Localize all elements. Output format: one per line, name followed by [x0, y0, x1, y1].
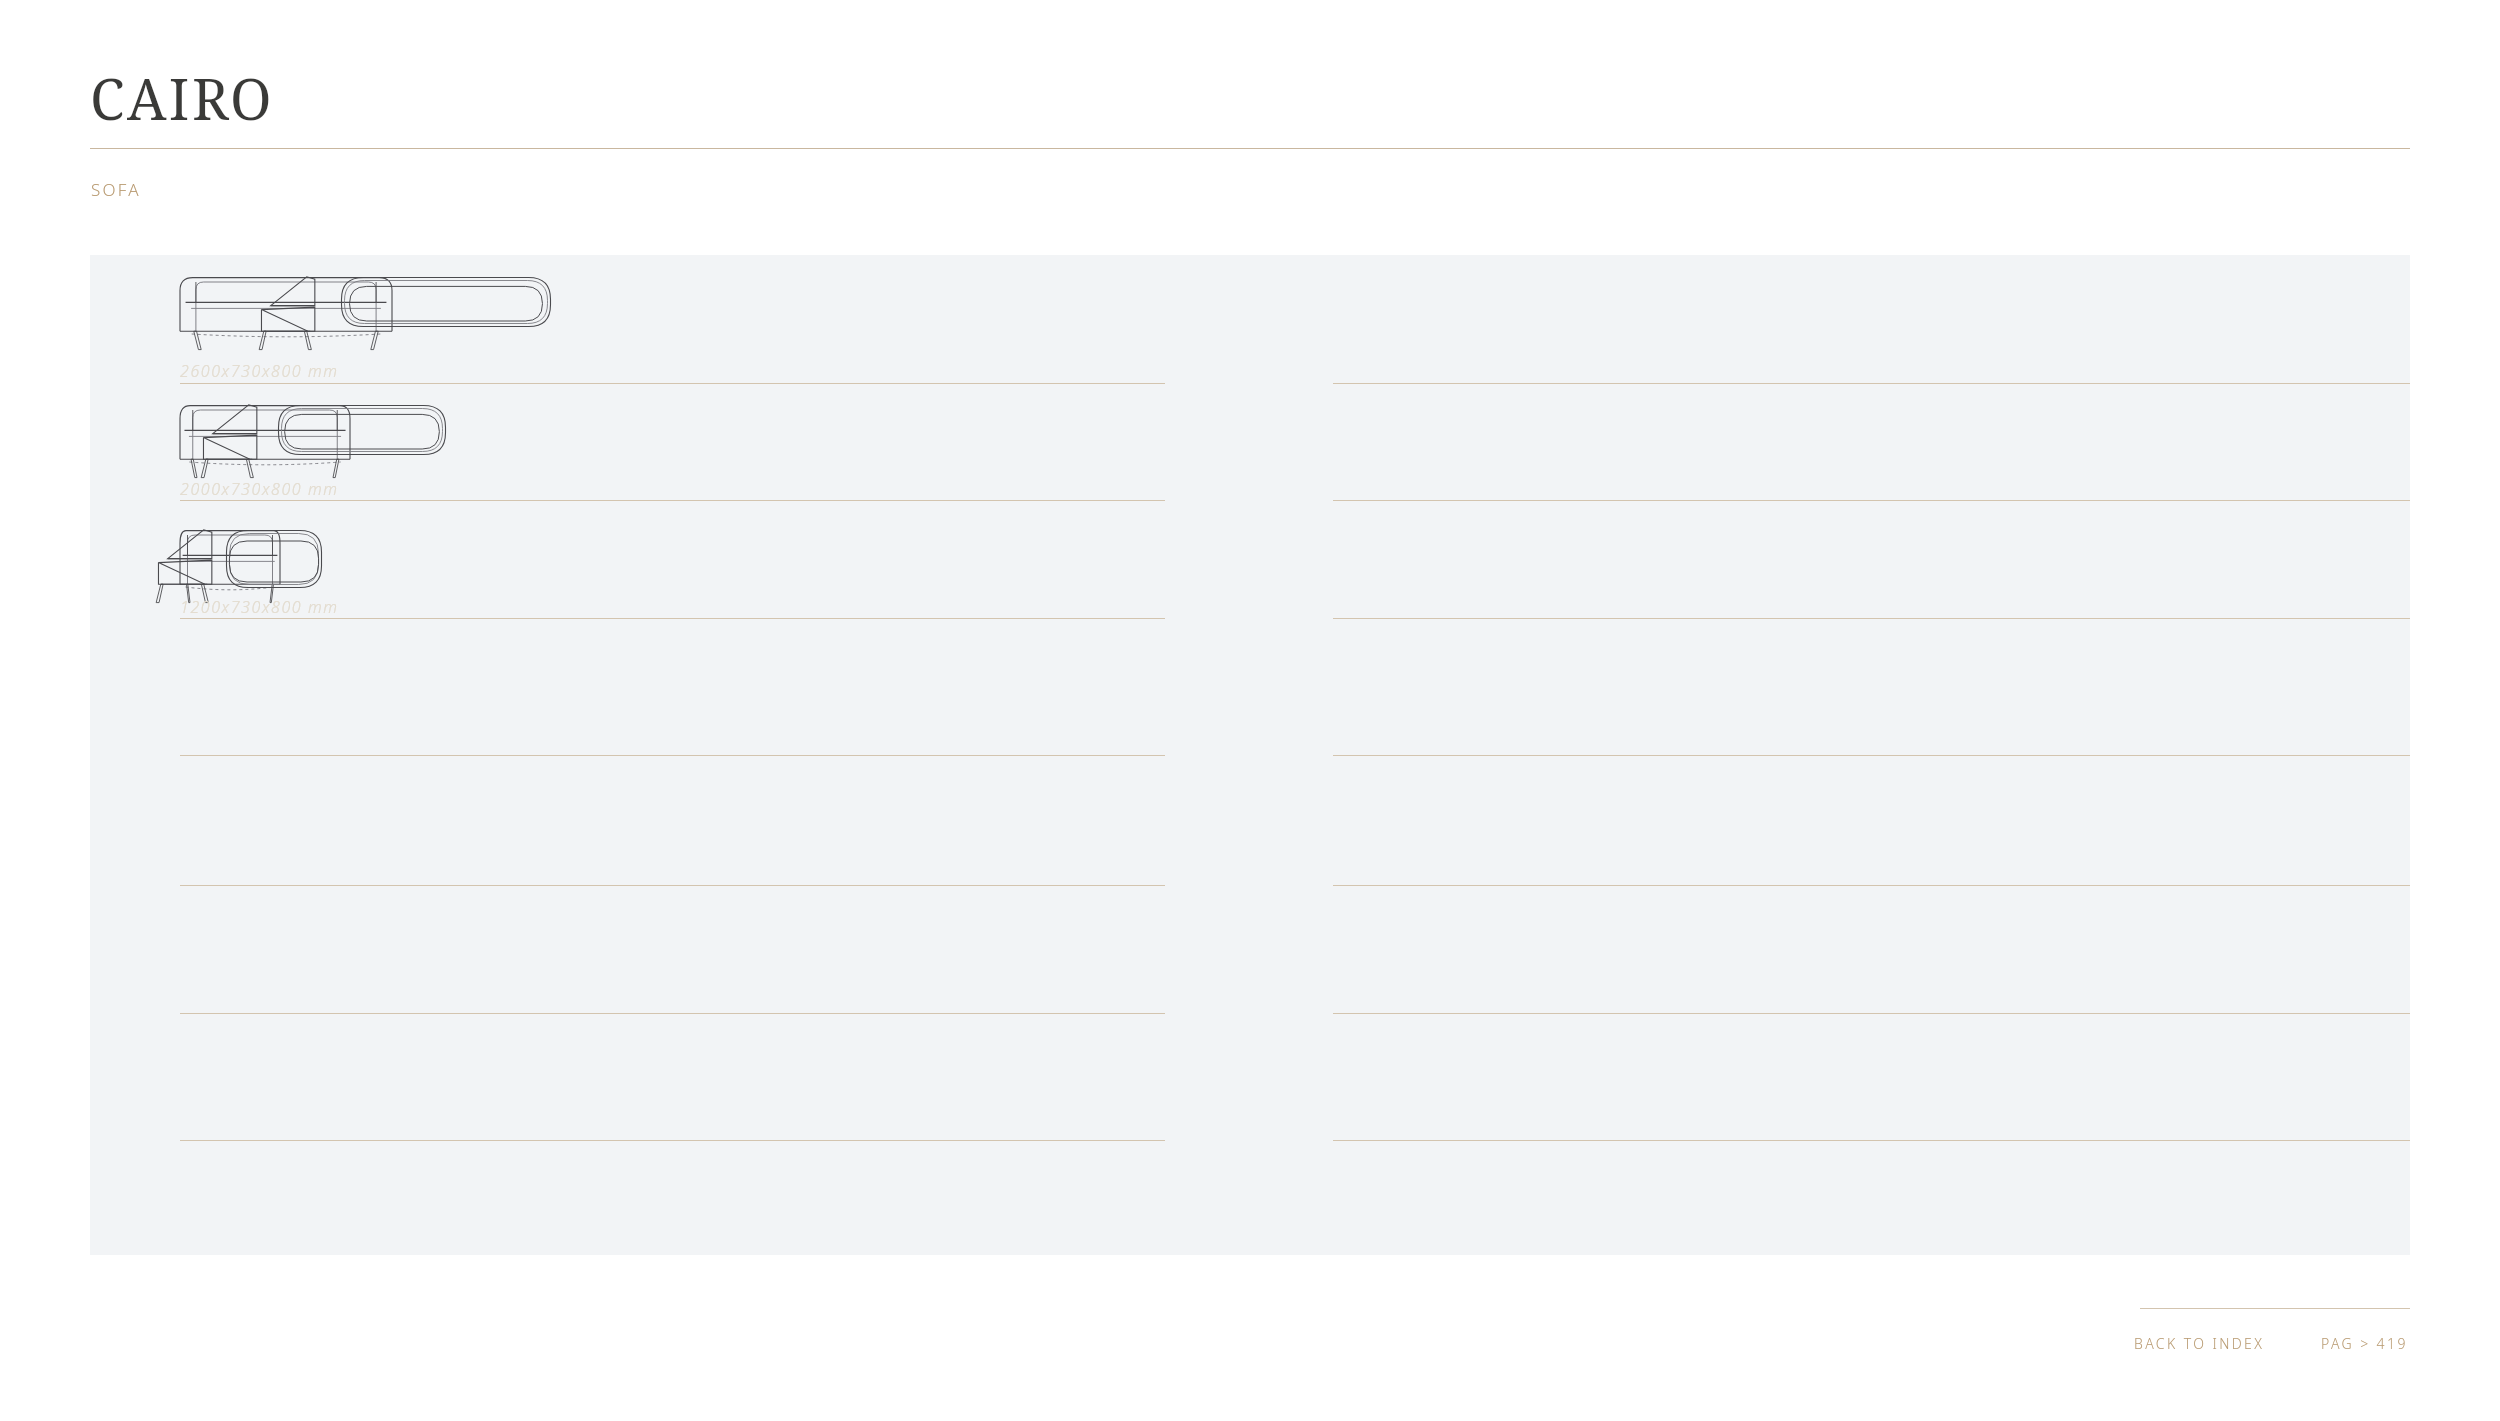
button[interactable]: Sofa front elevation drawing: [180, 272, 392, 352]
staticText: SOFA: [91, 178, 141, 201]
button[interactable]: Sofa plan view drawing: [225, 529, 323, 589]
button[interactable]: Sofa front elevation drawing: [180, 400, 350, 480]
staticText: 2600x730x800 mm: [180, 360, 339, 382]
staticText: PAG > 419: [2321, 1334, 2408, 1353]
button[interactable]: Sofa front elevation drawing: [180, 525, 280, 605]
button[interactable]: Sofa plan view drawing: [277, 404, 447, 456]
button[interactable]: BACK TO INDEX: [2130, 1328, 2269, 1359]
staticText: BACK TO INDEX: [2134, 1334, 2265, 1353]
button[interactable]: Sofa side elevation drawing: [258, 272, 316, 352]
staticText: CAIRO: [90, 60, 275, 136]
button[interactable]: Sofa plan view drawing: [340, 276, 552, 328]
button[interactable]: PAG > 419: [2317, 1328, 2412, 1359]
button[interactable]: Sofa side elevation drawing: [155, 525, 213, 605]
staticText: 2000x730x800 mm: [180, 478, 339, 500]
button[interactable]: Sofa side elevation drawing: [200, 400, 258, 480]
staticText: 1200x730x800 mm: [180, 596, 339, 618]
